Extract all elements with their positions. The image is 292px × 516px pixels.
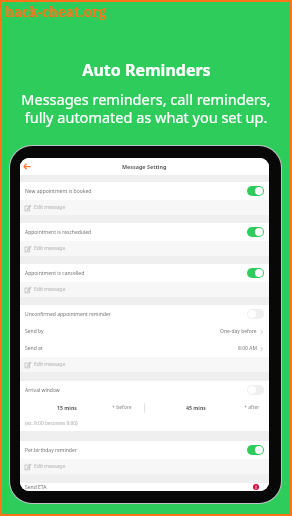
button[interactable]: Pet birthday reminder	[20, 441, 269, 459]
staticText: hack-cheat.org	[5, 3, 107, 21]
staticText: Arrival window	[25, 387, 247, 394]
staticText: One-day before	[220, 328, 257, 335]
button[interactable]: Toggle	[247, 385, 264, 395]
staticText: + before	[112, 404, 132, 411]
staticText: Auto Reminders	[82, 59, 211, 81]
button[interactable]: 15 mins	[20, 399, 144, 416]
staticText: 45 mins	[186, 404, 206, 411]
staticText: Send by	[25, 328, 220, 335]
button[interactable]: Edit message	[20, 241, 269, 256]
staticText: Unconfirmed appointment reminder	[25, 311, 247, 318]
staticText: Send ETA	[25, 484, 47, 491]
staticText: 15 mins	[57, 404, 77, 411]
staticText: Edit message	[34, 204, 66, 211]
button[interactable]: Appointment is rescheduled	[20, 223, 269, 241]
button[interactable]: Edit message	[20, 459, 269, 474]
staticText: Messages reminders, call reminders, full…	[21, 89, 271, 127]
button[interactable]: New appointment is booked	[20, 182, 269, 200]
button[interactable]: Back	[23, 162, 32, 171]
button[interactable]: Edit message	[20, 357, 269, 372]
staticText: + after	[244, 404, 260, 411]
staticText: Edit message	[34, 286, 66, 293]
staticText: Edit message	[34, 361, 66, 368]
button[interactable]: Toggle	[247, 309, 264, 319]
staticText: Edit message	[34, 463, 66, 470]
button[interactable]: 45 mins	[145, 399, 269, 416]
button[interactable]: Toggle	[247, 445, 264, 455]
button[interactable]: Toggle	[247, 186, 264, 196]
button[interactable]: Send at	[20, 340, 269, 357]
staticText: Appointment is rescheduled	[25, 229, 247, 236]
staticText: Message Setting	[122, 163, 167, 170]
staticText: Appointment is cancelled	[25, 270, 247, 277]
staticText: New appointment is booked	[25, 188, 247, 195]
button[interactable]: Edit message	[20, 282, 269, 297]
button[interactable]: Toggle	[247, 268, 264, 278]
staticText: (ex. 9:00 becomes 9:00)	[25, 420, 78, 427]
staticText: Edit message	[34, 245, 66, 252]
staticText: 8:00 AM	[238, 345, 257, 352]
button[interactable]: Arrival window	[20, 381, 269, 399]
button[interactable]: Unconfirmed appointment reminder	[20, 305, 269, 323]
staticText: Pet birthday reminder	[25, 447, 247, 454]
staticText: Send at	[25, 345, 238, 352]
button[interactable]: Send by	[20, 323, 269, 340]
button[interactable]: Toggle	[247, 227, 264, 237]
button[interactable]: Appointment is cancelled	[20, 264, 269, 282]
button[interactable]: Edit message	[20, 200, 269, 215]
